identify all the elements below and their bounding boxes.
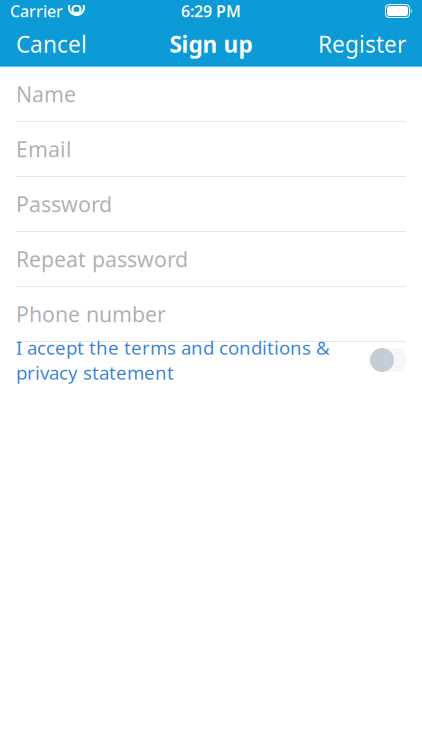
button[interactable]: I accept the terms and conditions & priv… bbox=[0, 342, 422, 378]
button[interactable]: Repeat password bbox=[0, 232, 422, 287]
staticText: Sign up bbox=[169, 29, 252, 59]
staticText: Password bbox=[16, 190, 112, 218]
button[interactable]: Phone number bbox=[0, 287, 422, 342]
staticText: Cancel bbox=[16, 29, 87, 59]
staticText: Repeat password bbox=[16, 245, 188, 273]
button[interactable]: Email bbox=[0, 122, 422, 177]
staticText: Name bbox=[16, 80, 76, 108]
button[interactable]: Register bbox=[302, 22, 422, 66]
button[interactable]: Name bbox=[0, 67, 422, 122]
button[interactable]: Password bbox=[0, 177, 422, 232]
staticText: 6:29 PM bbox=[181, 0, 241, 22]
staticText: Phone number bbox=[16, 300, 166, 328]
staticText: Email bbox=[16, 135, 72, 163]
button[interactable]: Cancel bbox=[0, 22, 103, 66]
staticText: I accept the terms and conditions & priv… bbox=[16, 335, 330, 385]
staticText: Register bbox=[318, 29, 406, 59]
staticText: Carrier bbox=[10, 0, 63, 22]
